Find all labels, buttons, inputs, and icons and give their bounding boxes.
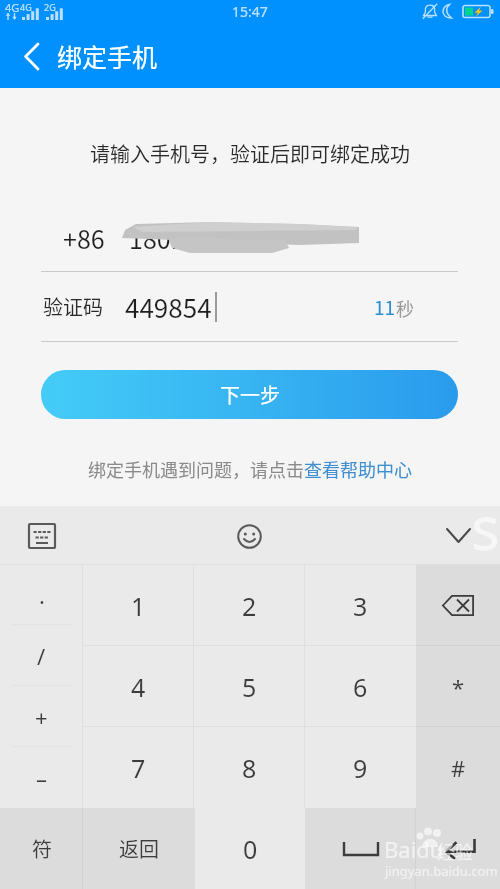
button[interactable]: * bbox=[416, 646, 500, 727]
staticText: 18012345678 bbox=[129, 220, 282, 256]
staticText: 下一步 bbox=[220, 380, 280, 409]
button[interactable]: Backspace bbox=[416, 565, 500, 646]
button[interactable]: 查看帮助中心 bbox=[304, 456, 412, 482]
staticText: jingyan.baidu.com bbox=[385, 862, 498, 880]
button[interactable]: Back bbox=[7, 24, 55, 88]
button[interactable]: / bbox=[0, 625, 83, 686]
button[interactable]: + bbox=[0, 686, 83, 747]
staticText: 4G bbox=[20, 1, 32, 13]
button[interactable]: Keyboard layout bbox=[0, 506, 83, 565]
button[interactable]: 8 bbox=[194, 727, 305, 808]
button[interactable]: 6 bbox=[305, 646, 416, 727]
staticText: 1 bbox=[131, 589, 146, 623]
button[interactable]: 1 bbox=[83, 565, 194, 646]
staticText: 5 bbox=[242, 670, 257, 704]
staticText: 绑定手机遇到问题，请点击 bbox=[88, 456, 304, 482]
staticText: 返回 bbox=[119, 834, 159, 863]
button[interactable]: 5 bbox=[194, 646, 305, 727]
staticText: 2G bbox=[44, 1, 56, 13]
staticText: 3 bbox=[353, 589, 368, 623]
button[interactable]: 4 bbox=[83, 646, 194, 727]
staticText: 6 bbox=[353, 670, 368, 704]
staticText: / bbox=[37, 641, 46, 671]
button[interactable]: Enter bbox=[416, 808, 500, 889]
button[interactable]: Space bbox=[305, 808, 416, 889]
staticText: 2 bbox=[242, 589, 257, 623]
staticText: . bbox=[39, 580, 45, 610]
button[interactable]: 返回 bbox=[83, 808, 195, 889]
staticText: 秒 bbox=[396, 295, 414, 321]
button[interactable]: 9 bbox=[305, 727, 416, 808]
staticText: 4G bbox=[5, 0, 20, 15]
button[interactable]: 7 bbox=[83, 727, 194, 808]
staticText: +86 bbox=[63, 220, 105, 256]
staticText: + bbox=[35, 702, 48, 732]
staticText: s bbox=[471, 486, 500, 568]
staticText: 8 bbox=[242, 751, 257, 785]
staticText: 7 bbox=[131, 751, 146, 785]
staticText: – bbox=[36, 763, 48, 793]
button[interactable]: 2 bbox=[194, 565, 305, 646]
staticText: 验证码 bbox=[43, 292, 103, 321]
staticText: 符 bbox=[32, 834, 52, 863]
button[interactable]: 3 bbox=[305, 565, 416, 646]
button[interactable]: # bbox=[416, 727, 500, 808]
staticText: * bbox=[452, 672, 465, 702]
staticText: 绑定手机 bbox=[57, 38, 158, 74]
staticText: 经验 bbox=[437, 838, 473, 864]
staticText: # bbox=[451, 753, 466, 783]
button[interactable]: 下一步 bbox=[41, 370, 458, 419]
button[interactable]: 0 bbox=[195, 808, 305, 889]
button[interactable]: Emoji bbox=[221, 508, 277, 564]
staticText: Baidu bbox=[384, 834, 444, 864]
staticText: 11 bbox=[374, 293, 396, 321]
button[interactable]: – bbox=[0, 747, 83, 808]
staticText: 查看帮助中心 bbox=[304, 456, 412, 482]
button[interactable]: 符 bbox=[0, 808, 83, 889]
staticText: 4 bbox=[131, 670, 146, 704]
staticText: 449854 bbox=[125, 288, 212, 326]
button[interactable]: . bbox=[0, 565, 83, 625]
staticText: 15:47 bbox=[232, 2, 268, 21]
staticText: 0 bbox=[243, 832, 258, 866]
staticText: 9 bbox=[353, 751, 368, 785]
staticText: 请输入手机号，验证后即可绑定成功 bbox=[0, 139, 500, 168]
button[interactable]: Hide keyboard bbox=[416, 506, 500, 565]
